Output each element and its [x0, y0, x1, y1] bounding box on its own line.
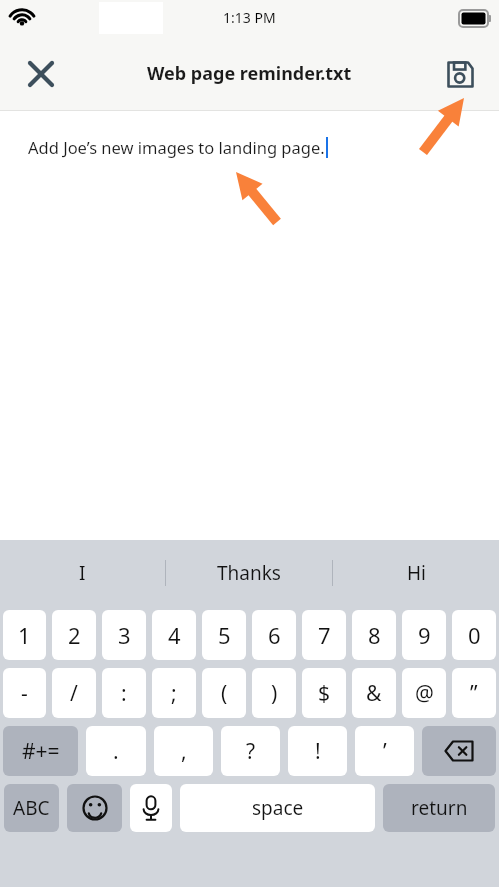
- staticText: 8: [368, 620, 381, 650]
- button[interactable]: ?: [221, 726, 280, 776]
- staticText: (: [221, 679, 228, 708]
- staticText: :: [121, 679, 127, 708]
- staticText: Web page reminder.txt: [147, 61, 352, 86]
- button[interactable]: Thanks: [166, 540, 332, 606]
- button[interactable]: 7: [302, 610, 346, 660]
- staticText: 2: [68, 620, 81, 650]
- staticText: $: [318, 679, 331, 708]
- button[interactable]: ’: [355, 726, 414, 776]
- button[interactable]: /: [52, 668, 96, 718]
- button[interactable]: 4: [152, 610, 196, 660]
- button[interactable]: ”: [452, 668, 496, 718]
- button[interactable]: (: [202, 668, 246, 718]
- button[interactable]: ,: [154, 726, 213, 776]
- staticText: 7: [318, 620, 331, 650]
- button[interactable]: ;: [152, 668, 196, 718]
- staticText: /: [70, 679, 78, 708]
- staticText: ,: [181, 737, 187, 766]
- button[interactable]: $: [302, 668, 346, 718]
- staticText: #+=: [22, 737, 60, 766]
- button[interactable]: .: [86, 726, 146, 776]
- button[interactable]: Save: [435, 49, 485, 99]
- button[interactable]: 3: [102, 610, 146, 660]
- staticText: I: [79, 560, 86, 586]
- button[interactable]: 6: [252, 610, 296, 660]
- button[interactable]: 9: [402, 610, 446, 660]
- button[interactable]: ): [252, 668, 296, 718]
- staticText: ”: [470, 679, 478, 708]
- staticText: return: [411, 795, 468, 821]
- button[interactable]: 0: [452, 610, 496, 660]
- staticText: Thanks: [217, 560, 281, 586]
- staticText: 0: [468, 620, 481, 650]
- button[interactable]: space: [180, 784, 375, 832]
- staticText: Hi: [407, 560, 426, 586]
- staticText: ABC: [13, 795, 50, 821]
- staticText: ?: [246, 737, 256, 766]
- button[interactable]: 1: [3, 610, 46, 660]
- staticText: 3: [118, 620, 131, 650]
- button[interactable]: @: [402, 668, 446, 718]
- staticText: -: [21, 679, 28, 708]
- button[interactable]: 8: [352, 610, 396, 660]
- staticText: 4: [168, 620, 181, 650]
- staticText: ’: [383, 737, 387, 766]
- button[interactable]: -: [3, 668, 46, 718]
- button[interactable]: :: [102, 668, 146, 718]
- staticText: 9: [418, 620, 431, 650]
- button[interactable]: backspace: [422, 726, 496, 776]
- staticText: Add Joe’s new images to landing page.: [28, 136, 325, 158]
- staticText: 1:13 PM: [223, 8, 276, 27]
- button[interactable]: ABC: [4, 784, 59, 832]
- button[interactable]: emoji: [67, 784, 122, 832]
- button[interactable]: &: [352, 668, 396, 718]
- button[interactable]: 2: [52, 610, 96, 660]
- button[interactable]: Hi: [333, 540, 499, 606]
- button[interactable]: mic: [130, 784, 172, 832]
- button[interactable]: Close: [16, 49, 66, 99]
- button[interactable]: !: [288, 726, 347, 776]
- staticText: 1: [18, 620, 31, 650]
- staticText: @: [415, 679, 434, 708]
- staticText: &: [366, 679, 382, 708]
- button[interactable]: #+=: [3, 726, 78, 776]
- staticText: !: [315, 737, 321, 766]
- button[interactable]: 5: [202, 610, 246, 660]
- button[interactable]: return: [383, 784, 495, 832]
- staticText: ): [271, 679, 278, 708]
- staticText: ;: [171, 679, 177, 708]
- button[interactable]: I: [0, 540, 165, 606]
- staticText: .: [113, 737, 119, 766]
- staticText: 6: [268, 620, 281, 650]
- staticText: space: [252, 795, 304, 821]
- staticText: 5: [218, 620, 231, 650]
